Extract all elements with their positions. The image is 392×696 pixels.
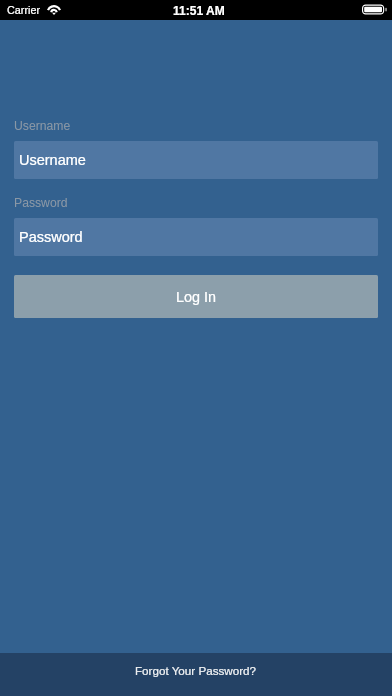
- staticText: Carrier: [7, 4, 40, 16]
- staticText: Log In: [176, 289, 217, 305]
- staticText: 11:51 AM: [173, 4, 225, 17]
- button[interactable]: Username: [14, 141, 378, 179]
- staticText: Username: [14, 119, 71, 133]
- staticText: Forgot Your Password?: [135, 664, 257, 677]
- button[interactable]: Password: [14, 218, 378, 256]
- staticText: Password: [19, 229, 83, 245]
- staticText: Username: [19, 152, 86, 168]
- staticText: Password: [14, 196, 68, 210]
- button[interactable]: Log In: [14, 275, 378, 318]
- button[interactable]: Forgot Your Password?: [0, 653, 392, 696]
